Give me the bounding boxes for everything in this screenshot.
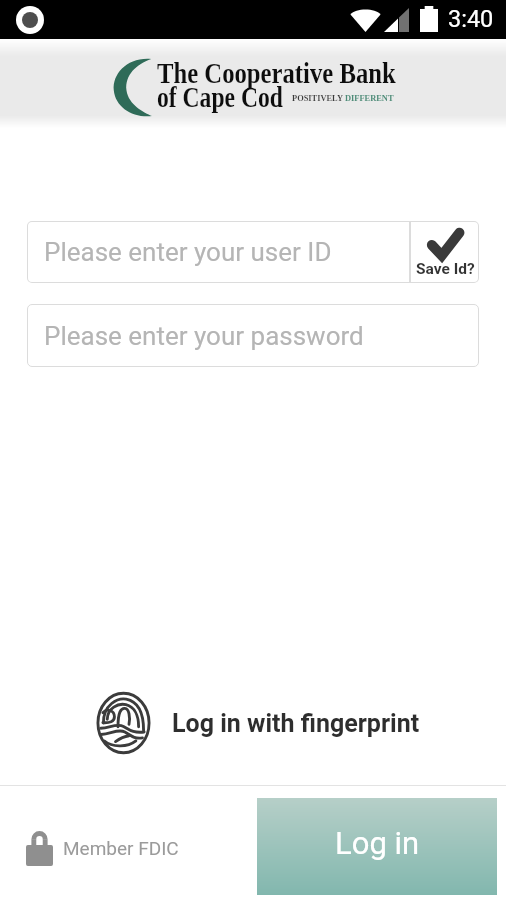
button[interactable]: Please enter your user ID (27, 221, 410, 283)
staticText: Log in (335, 825, 420, 861)
staticText: Please enter your password (44, 321, 364, 351)
button[interactable]: Log in (257, 798, 497, 895)
staticText: 3:40 (448, 5, 494, 33)
button[interactable]: Save Id (410, 221, 479, 283)
staticText: of Cape Cod (157, 81, 283, 114)
staticText: DIFFERENT (345, 94, 394, 103)
staticText: Please enter your user ID (44, 237, 332, 267)
staticText: Member FDIC (63, 837, 179, 859)
staticText: The Cooperative Bank (157, 57, 396, 90)
staticText: Save Id? (416, 260, 475, 278)
staticText: POSITIVELY (292, 94, 345, 103)
button[interactable]: Please enter your password (27, 304, 479, 367)
staticText: Log in with fingerprint (172, 709, 420, 738)
button[interactable]: Log in with fingerprint (96, 692, 420, 754)
